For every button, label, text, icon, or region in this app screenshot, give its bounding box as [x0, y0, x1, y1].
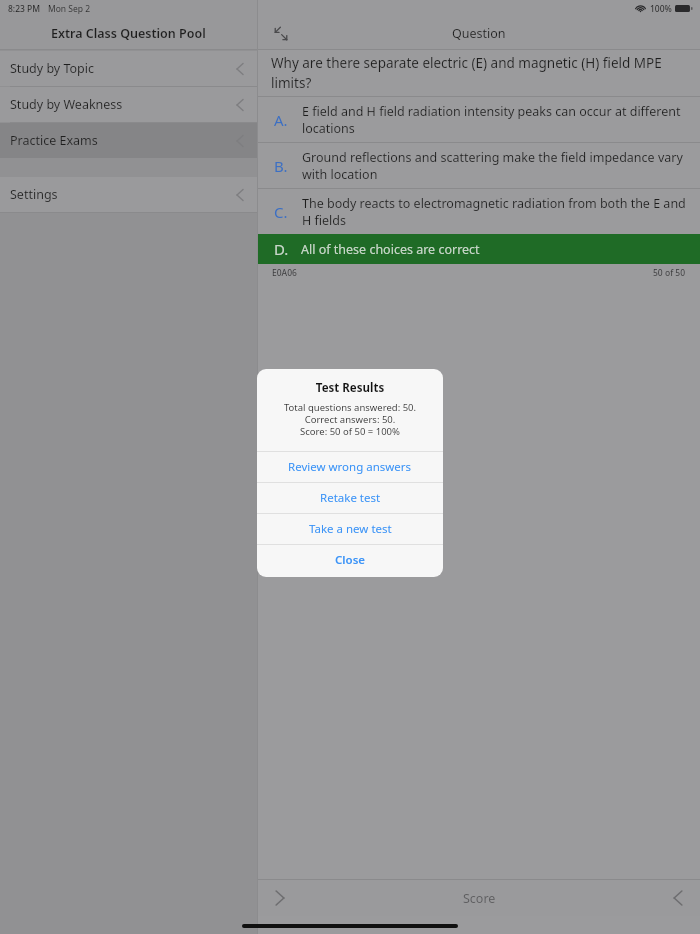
staticText: Test Results	[257, 380, 443, 396]
button[interactable]: Next question	[664, 884, 692, 912]
staticText: 100%	[650, 3, 672, 15]
button[interactable]: B.	[258, 143, 700, 188]
staticText: C.	[274, 202, 288, 222]
button[interactable]: Review wrong answers	[257, 452, 443, 482]
button[interactable]: A.	[258, 97, 700, 142]
staticText: D.	[274, 239, 289, 259]
button[interactable]: D.	[258, 234, 700, 264]
staticText: Study by Weakness	[10, 96, 123, 113]
staticText: Study by Topic	[10, 60, 95, 77]
button[interactable]: Study by Weakness	[0, 87, 257, 122]
staticText: Score	[463, 890, 496, 907]
staticText: Why are there separate electric (E) and …	[271, 54, 687, 92]
staticText: A.	[274, 110, 288, 130]
staticText: B.	[274, 156, 288, 176]
staticText: E0A06	[272, 267, 297, 279]
staticText: Settings	[10, 186, 58, 203]
staticText: Extra Class Question Pool	[51, 25, 206, 42]
staticText: Review wrong answers	[288, 459, 412, 475]
button[interactable]: Previous question	[266, 884, 294, 912]
staticText: Close	[335, 552, 366, 568]
button[interactable]: Settings	[0, 177, 257, 212]
staticText: E field and H field radiation intensity …	[302, 103, 692, 137]
staticText: All of these choices are correct	[301, 241, 480, 258]
button[interactable]: Retake test	[257, 483, 443, 513]
staticText: 8:23 PM	[8, 3, 41, 15]
button[interactable]: Take a new test	[257, 514, 443, 544]
staticText: Mon Sep 2	[48, 3, 91, 15]
staticText: Question	[452, 25, 506, 42]
staticText: 50 of 50	[653, 267, 686, 279]
staticText: Take a new test	[309, 521, 392, 537]
staticText: Retake test	[320, 490, 381, 506]
button[interactable]: Close	[257, 545, 443, 575]
button[interactable]: Collapse sidebar	[268, 20, 294, 46]
button[interactable]: C.	[258, 189, 700, 234]
staticText: Practice Exams	[10, 132, 98, 149]
button[interactable]: Study by Topic	[0, 51, 257, 86]
staticText: Total questions answered: 50. Correct an…	[257, 401, 443, 438]
button[interactable]: Practice Exams	[0, 123, 257, 158]
staticText: The body reacts to electromagnetic radia…	[302, 195, 692, 229]
staticText: Ground reflections and scattering make t…	[302, 149, 692, 183]
